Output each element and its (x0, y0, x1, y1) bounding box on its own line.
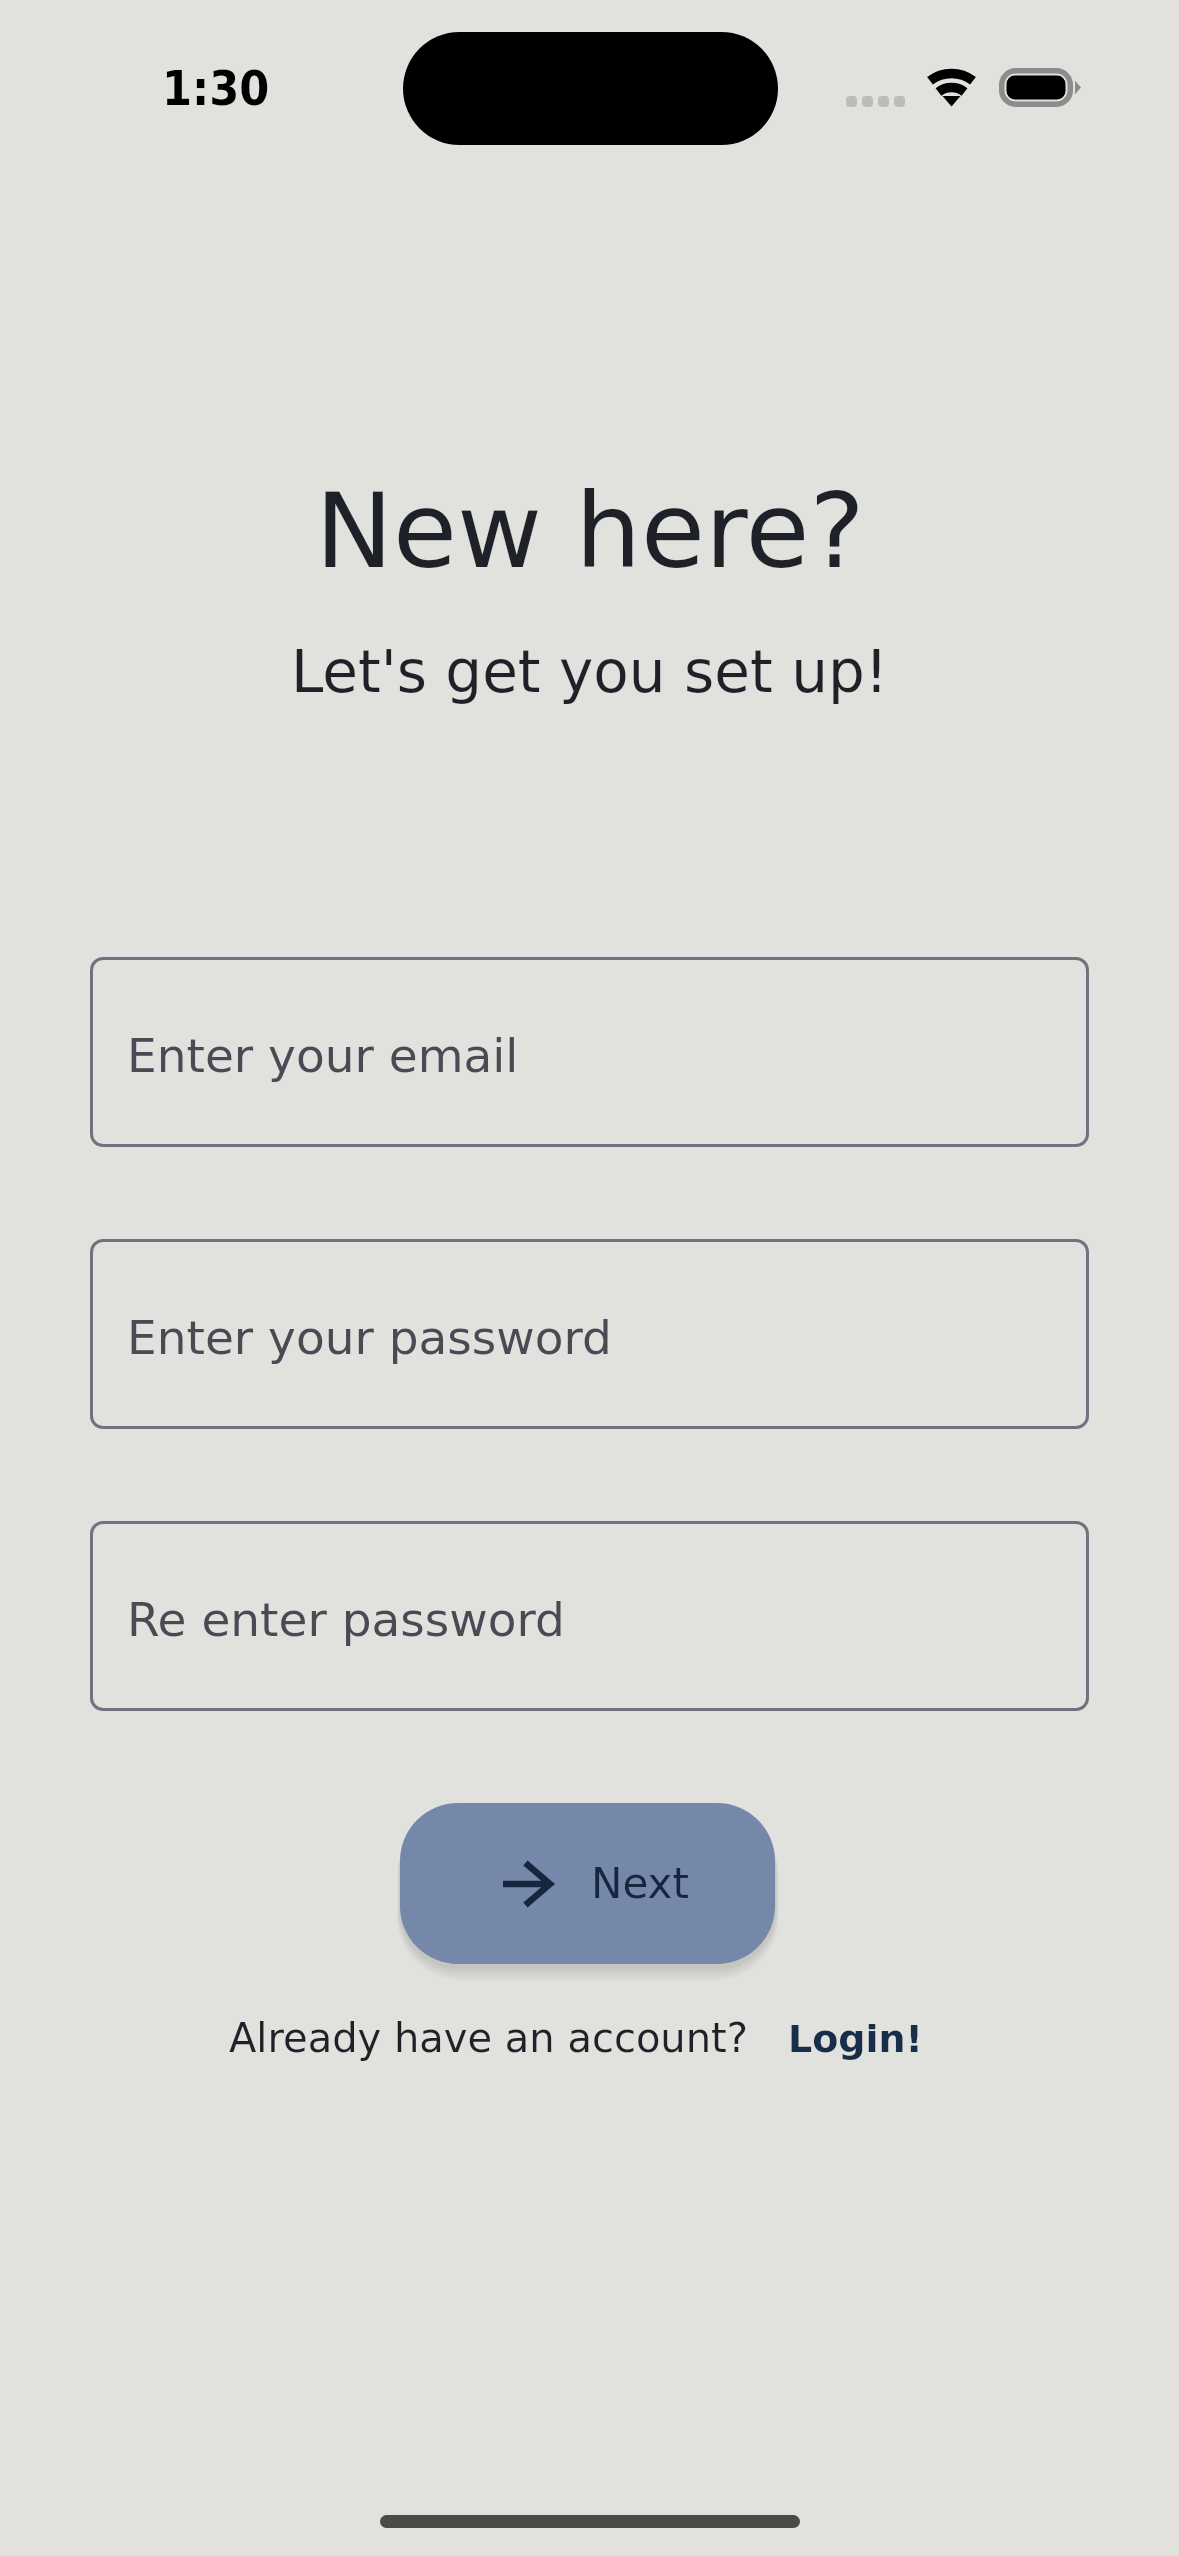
other: Wi-Fi (925, 68, 978, 107)
staticText: 1:30 (162, 60, 270, 116)
button[interactable]: Enter your email (90, 957, 1089, 1147)
staticText: Let's get you set up! (291, 638, 888, 706)
button[interactable]: Re enter password (90, 1521, 1089, 1711)
staticText: Re enter password (127, 1592, 565, 1647)
button[interactable]: Enter your password (90, 1239, 1089, 1429)
staticText: Next (591, 1859, 689, 1908)
button[interactable]: Next (400, 1803, 775, 1964)
staticText: Login! (788, 2017, 923, 2061)
staticText: Enter your password (127, 1310, 612, 1365)
button[interactable]: Login! (788, 2017, 923, 2061)
staticText: New here? (315, 470, 865, 591)
staticText: Already have an account? (229, 2015, 748, 2062)
other: Battery (999, 68, 1082, 107)
staticText: Enter your email (127, 1028, 519, 1083)
other: Cellular signal (846, 96, 905, 107)
